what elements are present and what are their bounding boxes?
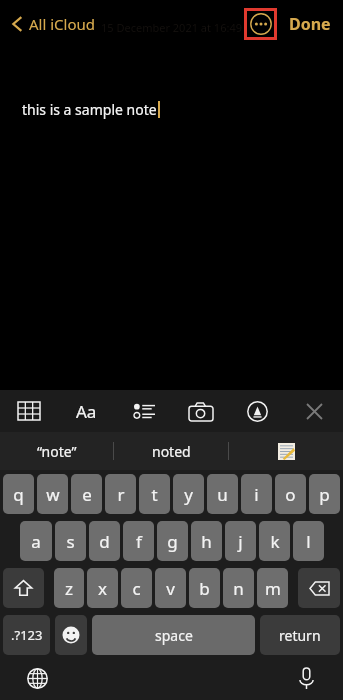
button[interactable]: Emoji: [55, 615, 87, 655]
button[interactable]: m: [257, 568, 288, 608]
button[interactable]: More options: [247, 11, 274, 37]
staticText: 15 December 2021 at 16:49: [101, 20, 242, 35]
button[interactable]: e: [71, 474, 102, 514]
staticText: c: [132, 577, 141, 600]
button[interactable]: x: [87, 568, 118, 608]
staticText: t: [151, 483, 158, 506]
staticText: j: [238, 530, 243, 553]
button[interactable]: q: [3, 474, 34, 514]
button[interactable]: y: [173, 474, 204, 514]
staticText: s: [66, 530, 75, 553]
button[interactable]: r: [105, 474, 136, 514]
staticText: k: [270, 530, 280, 553]
staticText: All iCloud: [29, 14, 96, 34]
button[interactable]: p: [309, 474, 340, 514]
button[interactable]: Backspace: [298, 568, 340, 608]
button[interactable]: Done: [285, 7, 335, 41]
button[interactable]: Format text: [58, 390, 115, 432]
staticText: Done: [289, 13, 331, 35]
button[interactable]: n: [223, 568, 254, 608]
button[interactable]: Change keyboard language: [22, 663, 52, 693]
staticText: g: [167, 530, 178, 553]
staticText: return: [279, 626, 321, 645]
staticText: Aa: [76, 400, 97, 423]
button[interactable]: t: [139, 474, 170, 514]
staticText: w: [46, 483, 60, 506]
staticText: m: [265, 577, 281, 600]
staticText: o: [285, 483, 296, 506]
button[interactable]: d: [89, 521, 120, 561]
staticText: v: [166, 577, 175, 600]
staticText: q: [13, 483, 24, 506]
button[interactable]: j: [225, 521, 256, 561]
staticText: n: [233, 577, 244, 600]
button[interactable]: z: [54, 568, 84, 608]
button[interactable]: noted: [114, 432, 228, 470]
button[interactable]: Markup: [229, 390, 286, 432]
button[interactable]: s: [55, 521, 86, 561]
button[interactable]: c: [121, 568, 152, 608]
button[interactable]: .?123: [3, 615, 50, 655]
button[interactable]: l: [293, 521, 324, 561]
button[interactable]: w: [37, 474, 68, 514]
staticText: z: [65, 577, 73, 600]
staticText: .?123: [11, 626, 43, 644]
button[interactable]: Memo emoji: [229, 432, 343, 470]
button[interactable]: space: [92, 615, 255, 655]
button[interactable]: Camera: [172, 390, 229, 432]
staticText: p: [319, 483, 330, 506]
button[interactable]: a: [20, 521, 52, 561]
staticText: i: [254, 483, 259, 506]
staticText: noted: [152, 442, 191, 461]
button[interactable]: return: [260, 615, 340, 655]
button[interactable]: Close: [286, 390, 343, 432]
button[interactable]: u: [207, 474, 238, 514]
button[interactable]: Dictation: [291, 663, 321, 693]
button[interactable]: h: [191, 521, 222, 561]
button[interactable]: v: [155, 568, 186, 608]
staticText: b: [199, 577, 210, 600]
staticText: u: [217, 483, 228, 506]
button[interactable]: b: [189, 568, 220, 608]
staticText: f: [136, 530, 142, 553]
staticText: a: [31, 530, 41, 553]
button[interactable]: o: [275, 474, 306, 514]
staticText: space: [155, 626, 193, 645]
button[interactable]: f: [123, 521, 154, 561]
staticText: h: [201, 530, 212, 553]
staticText: “note”: [37, 442, 77, 461]
staticText: d: [99, 530, 110, 553]
button[interactable]: g: [157, 521, 188, 561]
button[interactable]: Checklist: [115, 390, 172, 432]
staticText: this is a sample note: [22, 100, 157, 119]
button[interactable]: k: [259, 521, 290, 561]
staticText: r: [117, 483, 125, 506]
staticText: l: [306, 530, 311, 553]
button[interactable]: “note”: [0, 432, 113, 470]
button[interactable]: Table: [0, 390, 58, 432]
staticText: y: [184, 483, 193, 506]
button[interactable]: Shift: [3, 568, 44, 608]
button[interactable]: All iCloud: [8, 8, 100, 40]
staticText: e: [82, 483, 92, 506]
staticText: x: [98, 577, 107, 600]
button[interactable]: i: [241, 474, 272, 514]
